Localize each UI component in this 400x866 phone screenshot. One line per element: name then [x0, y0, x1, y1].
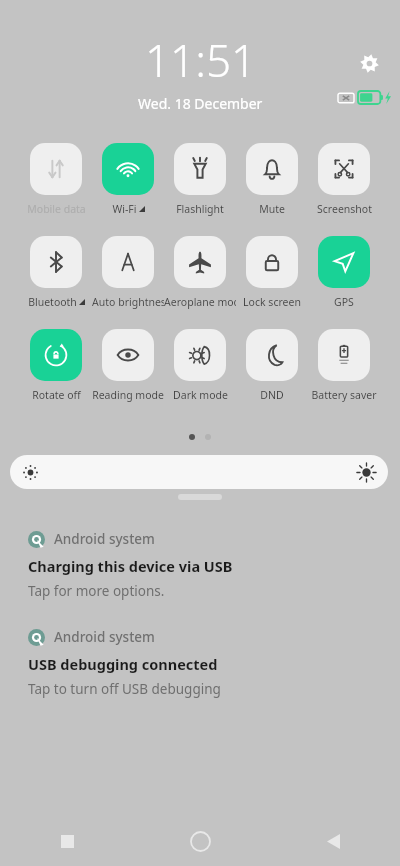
staticText: Mute [259, 202, 285, 216]
button[interactable]: Auto brightness [92, 236, 164, 309]
button[interactable]: DND [236, 329, 308, 402]
staticText: Mobile data [27, 202, 86, 216]
button[interactable]: Mobile data [20, 143, 92, 216]
staticText: Rotate off [32, 388, 81, 402]
staticText: Flashlight [176, 202, 224, 216]
staticText: Tap to turn off USB debugging [28, 680, 221, 698]
staticText: Wed. 18 December [138, 94, 263, 113]
staticText: Charging this device via USB [28, 556, 233, 576]
button[interactable]: Settings [352, 46, 386, 80]
button[interactable]: Battery saver [308, 329, 380, 402]
button[interactable]: Back [267, 816, 400, 866]
staticText: Dark mode [173, 388, 228, 402]
staticText: USB debugging connected [28, 654, 218, 674]
staticText: Battery saver [311, 388, 377, 402]
button[interactable]: Home [134, 816, 267, 866]
button[interactable]: Bluetooth [20, 236, 92, 309]
staticText: Wi-Fi [112, 202, 137, 216]
button[interactable]: Screenshot [308, 143, 380, 216]
staticText: GPS [334, 295, 354, 309]
button[interactable]: Rotate off [20, 329, 92, 402]
button[interactable]: Android system [0, 628, 400, 698]
button[interactable]: Lock screen [236, 236, 308, 309]
staticText: Android system [54, 530, 155, 548]
staticText: Tap for more options. [28, 582, 165, 600]
button[interactable]: Reading mode [92, 329, 164, 402]
staticText: Lock screen [243, 295, 301, 309]
staticText: Reading mode [92, 388, 164, 402]
button[interactable]: Dark mode [164, 329, 236, 402]
staticText: 11:51 [145, 30, 257, 90]
button[interactable] [10, 455, 388, 489]
staticText: Aeroplane mode [164, 295, 236, 309]
staticText: Auto brightness [92, 295, 164, 309]
button[interactable]: Aeroplane mode [164, 236, 236, 309]
button[interactable]: Android system [0, 530, 400, 600]
staticText: Bluetooth [28, 295, 77, 309]
button[interactable]: Wi-Fi [92, 143, 164, 216]
button[interactable]: GPS [308, 236, 380, 309]
staticText: DND [260, 388, 284, 402]
button[interactable]: Recents [0, 816, 134, 866]
staticText: Screenshot [317, 202, 372, 216]
button[interactable]: Mute [236, 143, 308, 216]
button[interactable]: Flashlight [164, 143, 236, 216]
staticText: Android system [54, 628, 155, 646]
